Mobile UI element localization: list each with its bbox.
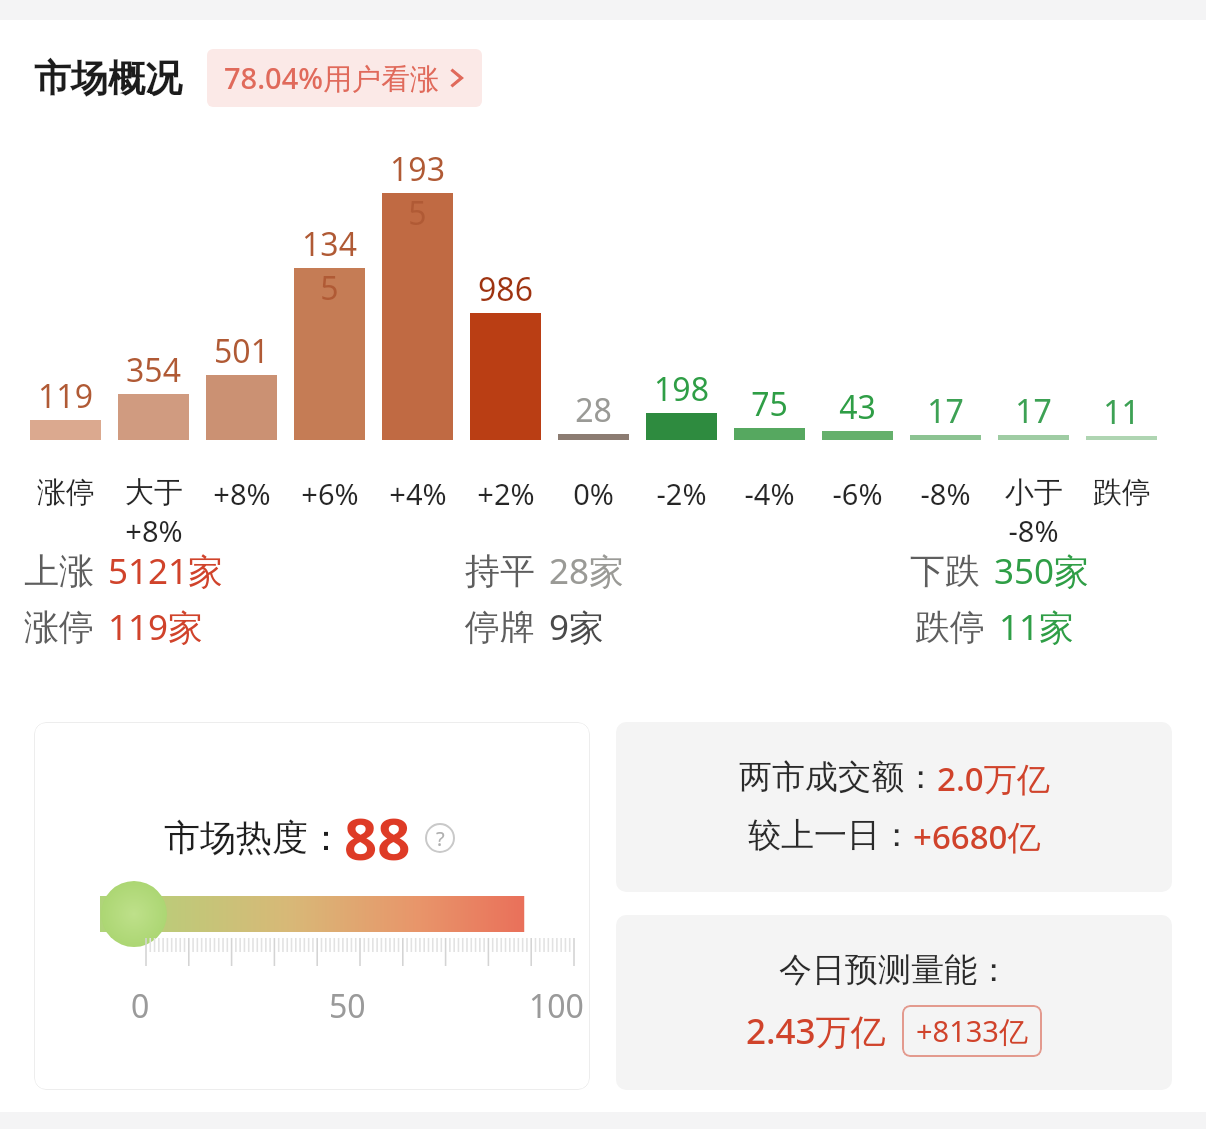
staticText: +8% bbox=[213, 474, 271, 513]
staticText: -8% bbox=[920, 474, 971, 513]
staticText: 停牌 bbox=[465, 605, 535, 649]
button[interactable]: 今日预测量能： bbox=[616, 915, 1172, 1090]
staticText: 11家 bbox=[999, 603, 1075, 651]
staticText: 28 bbox=[575, 388, 612, 432]
staticText: 354 bbox=[126, 348, 181, 392]
staticText: 持平 bbox=[465, 549, 535, 593]
staticText: 市场概况 bbox=[34, 55, 182, 102]
button[interactable]: 市场热度： bbox=[34, 722, 590, 1090]
button[interactable]: 78.04%用户看涨 bbox=[207, 49, 482, 107]
staticText: 17 bbox=[1015, 389, 1052, 433]
button[interactable]: 说明 bbox=[425, 823, 455, 853]
staticText: -8% bbox=[1008, 511, 1059, 550]
staticText: 1345 bbox=[294, 222, 365, 310]
staticText: 50 bbox=[329, 984, 366, 1028]
staticText: 78.04%用户看涨 bbox=[224, 58, 439, 98]
staticText: 9家 bbox=[549, 603, 605, 651]
staticText: 350家 bbox=[994, 547, 1090, 595]
staticText: 501 bbox=[214, 329, 269, 373]
staticText: +8% bbox=[125, 511, 183, 550]
staticText: 两市成交额： bbox=[739, 756, 937, 798]
staticText: -2% bbox=[656, 474, 707, 513]
staticText: 跌停 bbox=[1093, 474, 1151, 511]
staticText: 涨停 bbox=[24, 605, 94, 649]
staticText: 986 bbox=[478, 267, 533, 311]
staticText: -6% bbox=[832, 474, 883, 513]
staticText: 较上一日： bbox=[748, 814, 913, 856]
staticText: 小于 bbox=[1005, 474, 1063, 511]
staticText: 119 bbox=[38, 374, 93, 418]
staticText: 198 bbox=[654, 367, 709, 411]
staticText: +6% bbox=[301, 474, 359, 513]
staticText: 0% bbox=[573, 474, 614, 513]
staticText: 跌停 bbox=[915, 605, 985, 649]
staticText: +8133亿 bbox=[916, 1011, 1028, 1051]
staticText: 0 bbox=[131, 984, 150, 1028]
staticText: 88 bbox=[344, 798, 411, 877]
staticText: 市场热度： bbox=[164, 815, 344, 860]
staticText: +4% bbox=[389, 474, 447, 513]
staticText: ? bbox=[436, 825, 445, 852]
staticText: 17 bbox=[927, 389, 964, 433]
staticText: +2% bbox=[477, 474, 535, 513]
staticText: 今日预测量能： bbox=[779, 949, 1010, 991]
staticText: 100 bbox=[529, 984, 584, 1028]
staticText: 43 bbox=[839, 385, 876, 429]
staticText: 28家 bbox=[549, 547, 625, 595]
staticText: 涨停 bbox=[37, 474, 95, 511]
staticText: 5121家 bbox=[108, 547, 224, 595]
staticText: 上涨 bbox=[24, 549, 94, 593]
button[interactable]: 两市成交额： bbox=[616, 722, 1172, 892]
staticText: 下跌 bbox=[910, 549, 980, 593]
staticText: -4% bbox=[744, 474, 795, 513]
staticText: 大于 bbox=[125, 474, 183, 511]
staticText: 11 bbox=[1103, 390, 1140, 434]
staticText: 75 bbox=[751, 382, 788, 426]
staticText: 1935 bbox=[382, 147, 453, 235]
staticText: 2.0万亿 bbox=[937, 756, 1050, 801]
staticText: +6680亿 bbox=[913, 814, 1041, 859]
staticText: 119家 bbox=[108, 603, 204, 651]
staticText: 2.43万亿 bbox=[746, 1007, 886, 1055]
